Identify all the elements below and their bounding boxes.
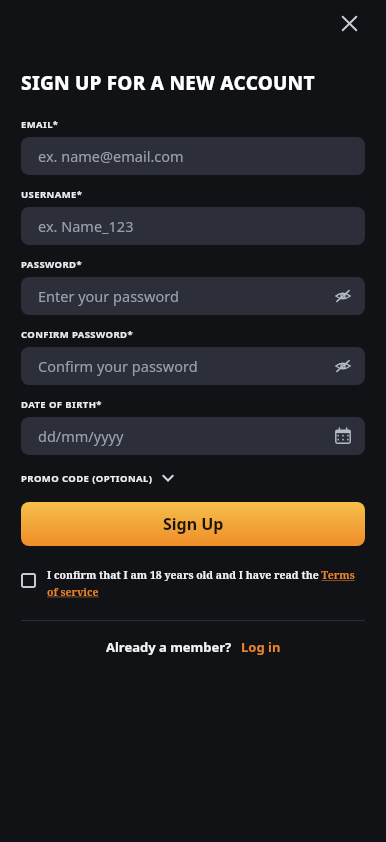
- staticText: dd/mm/yyyy: [38, 426, 124, 446]
- button[interactable]: Confirm your password: [21, 347, 365, 385]
- button[interactable]: Show password: [332, 285, 354, 307]
- staticText: DATE OF BIRTH*: [21, 398, 102, 411]
- button[interactable]: Log in: [241, 638, 281, 656]
- button[interactable]: Close: [335, 9, 363, 37]
- staticText: Confirm your password: [38, 356, 198, 376]
- staticText: ex. Name_123: [38, 216, 134, 236]
- button[interactable]: PROMO CODE (OPTIONAL): [21, 471, 175, 485]
- button[interactable]: Pick date: [332, 425, 354, 447]
- staticText: EMAIL*: [21, 118, 59, 131]
- button[interactable]: dd/mm/yyyy: [21, 417, 365, 455]
- button[interactable]: ex. Name_123: [21, 207, 365, 245]
- staticText: USERNAME*: [21, 188, 83, 201]
- staticText: Log in: [241, 638, 281, 656]
- button[interactable]: ex. name@email.com: [21, 137, 365, 175]
- button[interactable]: I confirm that I am 18 years old and I h…: [21, 568, 365, 599]
- staticText: ex. name@email.com: [38, 146, 184, 166]
- staticText: Sign Up: [163, 513, 224, 535]
- staticText: CONFIRM PASSWORD*: [21, 328, 133, 341]
- staticText: I confirm that I am 18 years old and I h…: [47, 568, 365, 599]
- button[interactable]: Sign Up: [21, 502, 365, 546]
- staticText: PROMO CODE (OPTIONAL): [21, 472, 153, 485]
- staticText: Already a member?: [106, 638, 232, 656]
- staticText: SIGN UP FOR A NEW ACCOUNT: [21, 70, 315, 96]
- staticText: Enter your password: [38, 286, 179, 306]
- button[interactable]: Show confirm password: [332, 355, 354, 377]
- staticText: PASSWORD*: [21, 258, 83, 271]
- button[interactable]: Enter your password: [21, 277, 365, 315]
